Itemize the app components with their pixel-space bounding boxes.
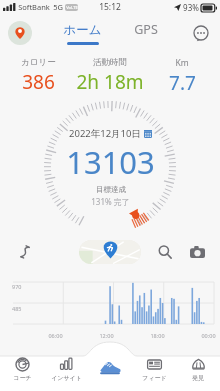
button[interactable]: Search <box>154 241 176 263</box>
button[interactable]: Profile <box>8 21 32 45</box>
staticText: 目標達成 <box>96 185 126 194</box>
staticText: 06:00 <box>48 332 63 339</box>
staticText: フィード <box>142 374 167 382</box>
button[interactable]: コーチ <box>0 357 44 391</box>
staticText: 発見 <box>192 374 204 382</box>
staticText: 12:00 <box>99 332 114 339</box>
button[interactable]: Km <box>150 57 214 96</box>
staticText: GPS <box>134 21 158 38</box>
button[interactable]: 発見 <box>176 357 220 391</box>
staticText: 18:00 <box>150 332 165 339</box>
button[interactable]: Step goal dial <box>44 101 176 233</box>
staticText: インサイト <box>51 374 82 382</box>
button[interactable]: インサイト <box>44 357 88 391</box>
staticText: 93% <box>183 2 199 13</box>
staticText: 13103 <box>66 141 155 183</box>
button[interactable]: Shuffle <box>14 241 36 263</box>
button[interactable]: Messages <box>190 22 212 44</box>
staticText: Km <box>175 57 189 69</box>
button[interactable]: フィード <box>132 357 176 391</box>
button[interactable]: Map route <box>79 240 141 264</box>
staticText: SoftBank <box>18 2 50 12</box>
staticText: 15:12 <box>99 1 121 13</box>
staticText: コーチ <box>13 374 32 382</box>
staticText: カロリー <box>21 57 56 68</box>
staticText: VoLTE <box>66 5 78 11</box>
staticText: 386 <box>22 69 55 95</box>
button[interactable]: GPS <box>128 21 164 45</box>
button[interactable]: Camera <box>186 241 208 263</box>
button[interactable]: カロリー <box>6 57 70 95</box>
button[interactable]: Activity chart <box>0 275 220 341</box>
button[interactable]: Activity <box>88 357 132 391</box>
staticText: 00:00 <box>201 332 216 339</box>
staticText: 7.7 <box>169 70 196 96</box>
staticText: 2h 18m <box>76 69 144 95</box>
button[interactable]: ホーム <box>57 22 108 45</box>
staticText: 485 <box>12 305 22 312</box>
staticText: 131% 完了 <box>91 196 130 207</box>
staticText: ホーム <box>63 22 102 38</box>
staticText: 5G <box>53 2 63 12</box>
staticText: 970 <box>12 283 22 290</box>
button[interactable]: 活動時間 <box>70 57 150 95</box>
staticText: 2022年12月10日 <box>69 127 141 140</box>
staticText: 活動時間 <box>93 57 127 68</box>
